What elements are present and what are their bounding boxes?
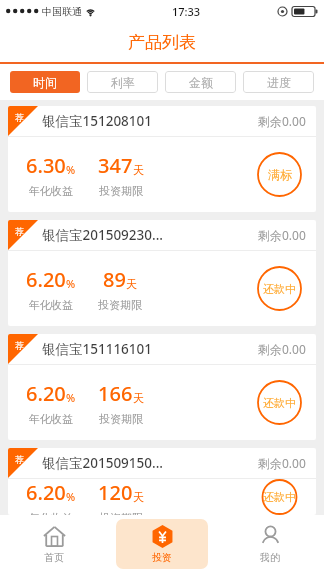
staticText: 首页 (44, 551, 64, 564)
staticText: 347 (98, 152, 133, 179)
button[interactable]: 荐 (8, 334, 316, 440)
button[interactable]: 进度 (243, 71, 314, 93)
other: 首页 (43, 525, 66, 548)
staticText: 剩余0.00 (258, 455, 306, 471)
staticText: % (66, 489, 76, 504)
staticText: 6.20 (26, 479, 66, 506)
staticText: 银信宝201509230... (42, 226, 164, 244)
staticText: 银信宝151208101 (42, 112, 152, 130)
button[interactable]: 时间 (10, 71, 80, 93)
button[interactable]: 还款中 (257, 479, 302, 515)
staticText: 还款中 (263, 490, 296, 504)
staticText: 产品列表 (128, 32, 196, 53)
staticText: 荐 (15, 340, 24, 351)
button[interactable]: 荐 (8, 106, 316, 212)
button[interactable]: 还款中 (257, 380, 302, 425)
staticText: 天 (126, 277, 137, 291)
staticText: 天 (133, 391, 144, 405)
staticText: 中国联通 (42, 5, 82, 18)
staticText: 166 (98, 380, 133, 407)
staticText: 89 (103, 266, 126, 293)
button[interactable]: 满标 (257, 152, 302, 197)
staticText: 17:33 (172, 4, 201, 19)
button[interactable]: 利率 (87, 71, 158, 93)
staticText: 天 (133, 490, 144, 504)
staticText: % (66, 390, 76, 405)
staticText: 满标 (268, 167, 292, 182)
button[interactable]: 首页 (8, 519, 100, 569)
staticText: 投资期限 (98, 298, 142, 312)
staticText: 投资期限 (99, 511, 143, 515)
staticText: 6.30 (26, 152, 66, 179)
staticText: 年化收益 (29, 184, 73, 198)
staticText: % (66, 276, 76, 291)
button[interactable]: 荐 (8, 448, 316, 515)
staticText: 时间 (33, 75, 57, 90)
other: 投资 (151, 525, 174, 548)
staticText: 银信宝201509150... (42, 454, 164, 472)
staticText: 银信宝151116101 (42, 340, 152, 358)
staticText: 荐 (15, 454, 24, 465)
button[interactable]: 我的 (224, 519, 316, 569)
staticText: 120 (98, 479, 133, 506)
staticText: 年化收益 (29, 412, 73, 426)
staticText: 投资期限 (99, 412, 143, 426)
staticText: 年化收益 (29, 298, 73, 312)
staticText: 荐 (15, 112, 24, 123)
button[interactable]: 投资 (116, 519, 208, 569)
staticText: 还款中 (263, 282, 296, 296)
staticText: 剩余0.00 (258, 113, 306, 129)
staticText: 年化收益 (29, 511, 73, 515)
staticText: 投资期限 (99, 184, 143, 198)
staticText: 剩余0.00 (258, 341, 306, 357)
staticText: 6.20 (26, 380, 66, 407)
staticText: 进度 (267, 75, 291, 90)
button[interactable]: 金额 (165, 71, 236, 93)
staticText: 还款中 (263, 396, 296, 410)
staticText: 投资 (152, 551, 172, 564)
staticText: % (66, 162, 76, 177)
staticText: 天 (133, 163, 144, 177)
staticText: 利率 (111, 75, 135, 90)
staticText: 我的 (260, 551, 280, 564)
staticText: 金额 (189, 75, 213, 90)
button[interactable]: 荐 (8, 220, 316, 326)
staticText: 荐 (15, 226, 24, 237)
staticText: 剩余0.00 (258, 227, 306, 243)
other: 我的 (259, 525, 282, 548)
staticText: 6.20 (26, 266, 66, 293)
button[interactable]: 还款中 (257, 266, 302, 311)
